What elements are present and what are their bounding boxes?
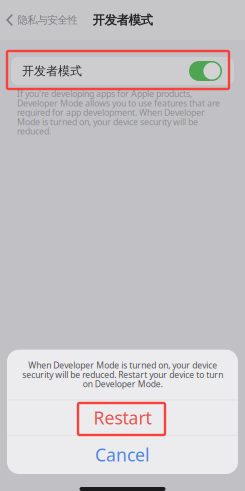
staticText: Restart bbox=[93, 406, 151, 430]
staticText: 隐私与安全性 bbox=[17, 13, 77, 26]
button[interactable]: Cancel bbox=[7, 435, 238, 474]
button[interactable]: Restart bbox=[7, 400, 238, 435]
button[interactable]: 隐私与安全性 bbox=[0, 6, 83, 34]
staticText: When Developer Mode is turned on, your d… bbox=[22, 361, 223, 389]
staticText: 开发者模式 bbox=[22, 64, 82, 78]
button[interactable]: 开发者模式 bbox=[11, 57, 234, 85]
staticText: 开发者模式 bbox=[92, 12, 152, 28]
staticText: If you're developing apps for Apple prod… bbox=[17, 89, 220, 136]
staticText: Cancel bbox=[95, 443, 150, 467]
